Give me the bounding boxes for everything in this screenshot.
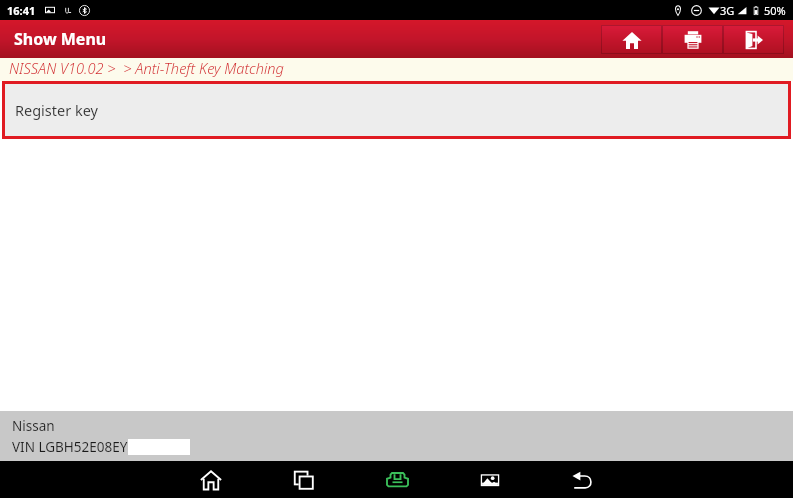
staticText: 3G xyxy=(720,3,735,18)
button[interactable]: Home xyxy=(188,461,234,498)
button[interactable]: Back xyxy=(560,461,606,498)
staticText: Nissan xyxy=(12,417,55,435)
staticText: Register key xyxy=(15,100,98,120)
staticText: 50% xyxy=(764,3,786,18)
staticText: 16:41 xyxy=(7,3,36,18)
button[interactable]: VCI xyxy=(374,461,420,498)
staticText: Show Menu xyxy=(14,28,107,50)
staticText: NISSAN V10.02 > > Anti-Theft Key Matchin… xyxy=(9,58,284,78)
button[interactable]: Exit xyxy=(723,25,784,54)
button[interactable]: Recents xyxy=(281,461,327,498)
button[interactable]: Home xyxy=(601,25,662,54)
staticText: VIN LGBH52E08EY xyxy=(12,438,128,456)
button[interactable]: Register key xyxy=(5,84,788,136)
button[interactable]: Screenshot xyxy=(467,461,513,498)
button[interactable]: Print xyxy=(662,25,723,54)
